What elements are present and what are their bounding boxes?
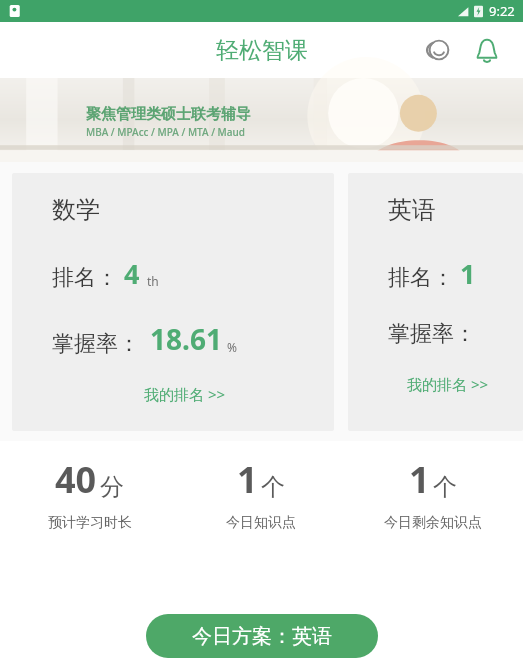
staticText: th <box>147 273 159 289</box>
staticText: 今日方案：英语 <box>192 624 332 649</box>
staticText: MBA / MPAcc / MPA / MTA / Maud <box>86 125 245 139</box>
staticText: 我的排名 >> <box>407 374 489 394</box>
button[interactable]: Customer service <box>419 30 459 70</box>
staticText: 1 <box>237 455 258 504</box>
staticText: 个 <box>261 472 285 502</box>
staticText: 今日知识点 <box>226 514 296 532</box>
button[interactable]: 数学 <box>12 173 334 431</box>
button[interactable]: 英语 <box>348 173 523 431</box>
staticText: 4 <box>124 255 140 292</box>
button[interactable]: 今日方案：英语 <box>146 614 378 658</box>
staticText: 掌握率： <box>52 330 140 358</box>
button[interactable]: 40 <box>4 455 175 532</box>
staticText: 聚焦管理类硕士联考辅导 <box>86 105 251 124</box>
staticText: 排名： <box>388 264 454 292</box>
button[interactable]: 1 <box>175 455 347 532</box>
staticText: 分 <box>100 472 124 502</box>
staticText: 今日剩余知识点 <box>384 514 482 532</box>
staticText: 排名： <box>52 264 118 292</box>
staticText: 预计学习时长 <box>48 514 132 532</box>
staticText: 40 <box>55 455 97 504</box>
staticText: 掌握率： <box>388 320 476 348</box>
staticText: 英语 <box>388 195 436 225</box>
staticText: 轻松智课 <box>216 36 308 65</box>
staticText: 1 <box>460 255 476 292</box>
staticText: 数学 <box>52 195 100 225</box>
staticText: 18.61 <box>150 320 222 358</box>
staticText: % <box>227 339 237 355</box>
staticText: 个 <box>433 472 457 502</box>
staticText: 1 <box>409 455 430 504</box>
button[interactable]: Notifications <box>467 30 507 70</box>
staticText: 我的排名 >> <box>144 384 226 404</box>
button[interactable]: 我的排名 >> <box>388 370 507 398</box>
staticText: 9:22 <box>489 2 515 20</box>
button[interactable]: 我的排名 >> <box>52 380 318 408</box>
button[interactable]: 1 <box>347 455 519 532</box>
